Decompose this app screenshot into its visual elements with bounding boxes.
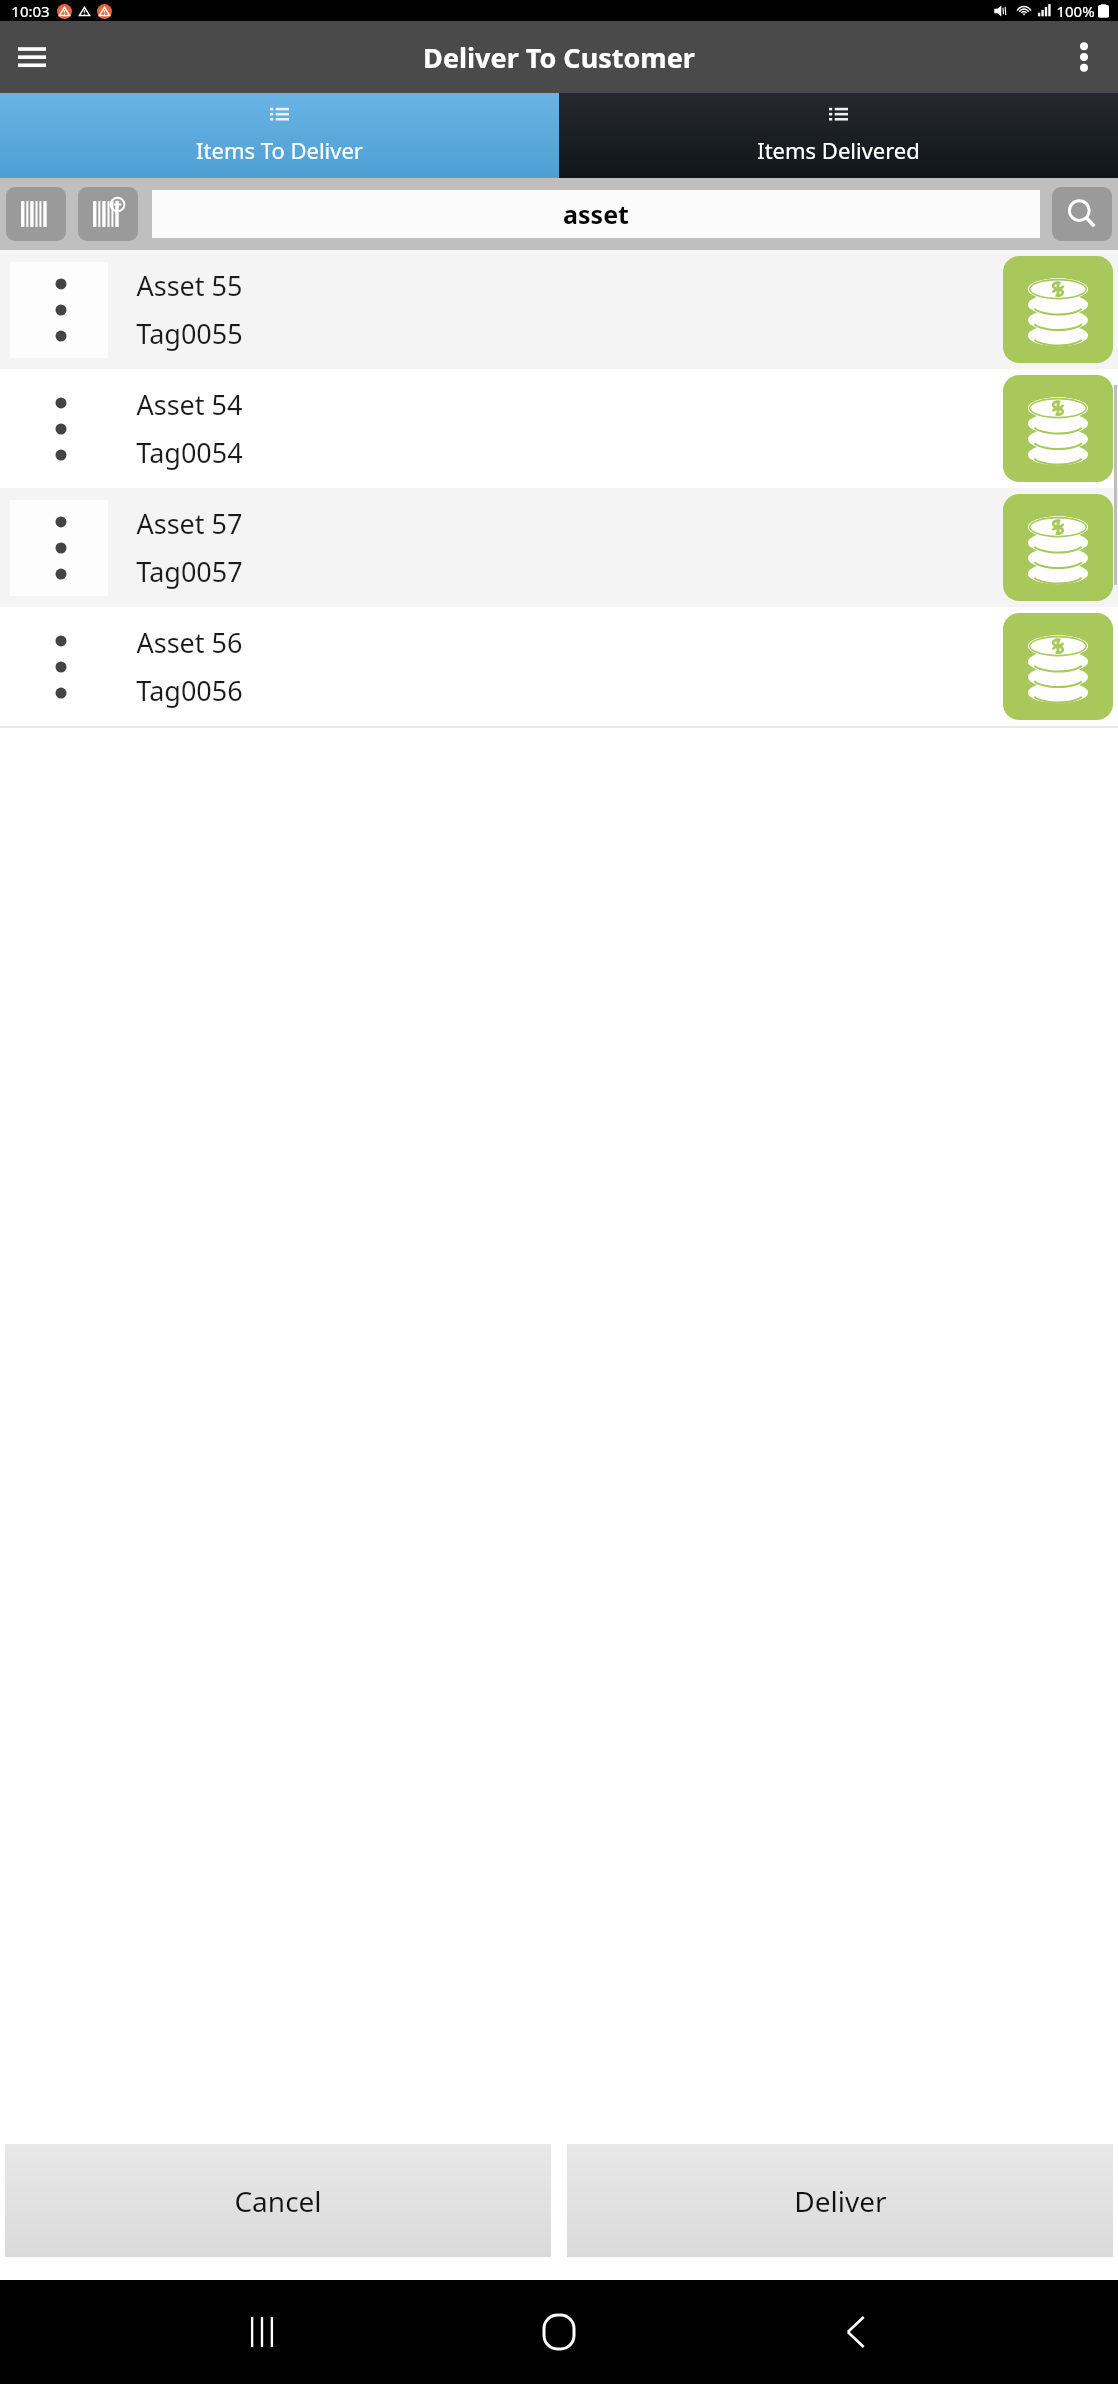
- staticText: Cancel: [234, 2182, 322, 2220]
- button[interactable]: Home: [524, 2297, 594, 2367]
- staticText: Tag0055: [136, 315, 243, 352]
- staticText: Items To Deliver: [196, 135, 363, 165]
- button[interactable]: Add barcode: [78, 187, 138, 241]
- staticText: Tag0056: [136, 672, 243, 709]
- staticText: Asset 54: [136, 386, 243, 423]
- button[interactable]: Menu: [6, 31, 58, 83]
- button[interactable]: Search: [1052, 187, 1112, 241]
- button[interactable]: Deliver: [567, 2144, 1113, 2257]
- staticText: asset: [563, 197, 629, 231]
- button[interactable]: Asset value: [1003, 256, 1113, 363]
- button[interactable]: Back: [821, 2297, 891, 2367]
- button[interactable]: Asset 55: [0, 250, 1118, 369]
- button[interactable]: Asset 57: [0, 488, 1118, 607]
- staticText: Deliver To Customer: [423, 39, 695, 76]
- button[interactable]: Asset 56: [0, 607, 1118, 726]
- button[interactable]: Asset value: [1003, 375, 1113, 482]
- staticText: 100%: [1056, 1, 1095, 21]
- button[interactable]: asset: [152, 190, 1040, 238]
- button[interactable]: Cancel: [5, 2144, 551, 2257]
- button[interactable]: Items To Deliver: [0, 93, 559, 178]
- staticText: Items Delivered: [757, 135, 920, 165]
- button[interactable]: Recents: [227, 2297, 297, 2367]
- button[interactable]: More options: [1058, 31, 1110, 83]
- staticText: Tag0057: [136, 553, 243, 590]
- button[interactable]: Scan barcode: [6, 187, 66, 241]
- staticText: Asset 56: [136, 624, 243, 661]
- staticText: 10:03: [11, 1, 50, 21]
- staticText: Deliver: [794, 2182, 887, 2220]
- staticText: Tag0054: [136, 434, 243, 471]
- button[interactable]: Items Delivered: [559, 93, 1118, 178]
- button[interactable]: Asset 54: [0, 369, 1118, 488]
- button[interactable]: Asset value: [1003, 613, 1113, 720]
- staticText: Asset 57: [136, 505, 243, 542]
- button[interactable]: Asset value: [1003, 494, 1113, 601]
- staticText: Asset 55: [136, 267, 243, 304]
